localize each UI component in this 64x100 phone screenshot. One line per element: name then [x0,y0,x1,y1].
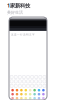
staticText: 这是一行说明文字 [11,33,35,36]
staticText: 1家新科技 [7,2,30,9]
staticText: 美好生活 [7,10,23,15]
